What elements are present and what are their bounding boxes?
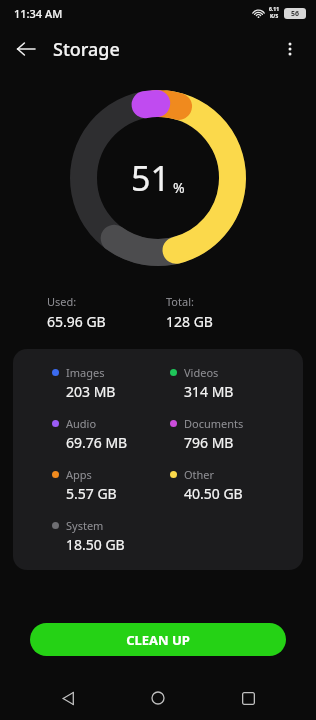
button[interactable]: Images — [13, 349, 303, 570]
staticText: Videos — [184, 365, 219, 380]
staticText: Storage — [53, 37, 120, 62]
button[interactable]: Back — [46, 676, 90, 720]
staticText: 18.50 GB — [66, 535, 125, 554]
button[interactable]: Back — [6, 29, 46, 69]
staticText: 56 — [291, 9, 300, 19]
button[interactable]: CLEAN UP — [30, 623, 286, 656]
staticText: Used: — [47, 294, 77, 309]
staticText: 69.76 MB — [66, 433, 128, 452]
staticText: 40.50 GB — [184, 484, 243, 503]
button[interactable]: More options — [270, 29, 310, 69]
staticText: 51 — [131, 155, 170, 201]
staticText: % — [173, 178, 185, 197]
staticText: Total: — [166, 294, 194, 309]
staticText: 314 MB — [184, 382, 234, 401]
staticText: Other — [184, 467, 215, 482]
staticText: 5.57 GB — [66, 484, 117, 503]
staticText: 6.11 — [269, 6, 279, 13]
staticText: 65.96 GB — [47, 312, 106, 331]
button[interactable]: Home — [136, 676, 180, 720]
staticText: CLEAN UP — [126, 631, 190, 649]
staticText: K/S — [270, 13, 279, 20]
staticText: Apps — [66, 467, 92, 482]
staticText: 128 GB — [166, 312, 213, 331]
staticText: Documents — [184, 416, 244, 431]
staticText: Audio — [66, 416, 97, 431]
staticText: System — [66, 518, 104, 533]
staticText: 11:34 AM — [14, 6, 63, 21]
button[interactable]: Recent apps — [226, 676, 270, 720]
staticText: 796 MB — [184, 433, 234, 452]
staticText: 203 MB — [66, 382, 116, 401]
staticText: Images — [66, 365, 105, 380]
